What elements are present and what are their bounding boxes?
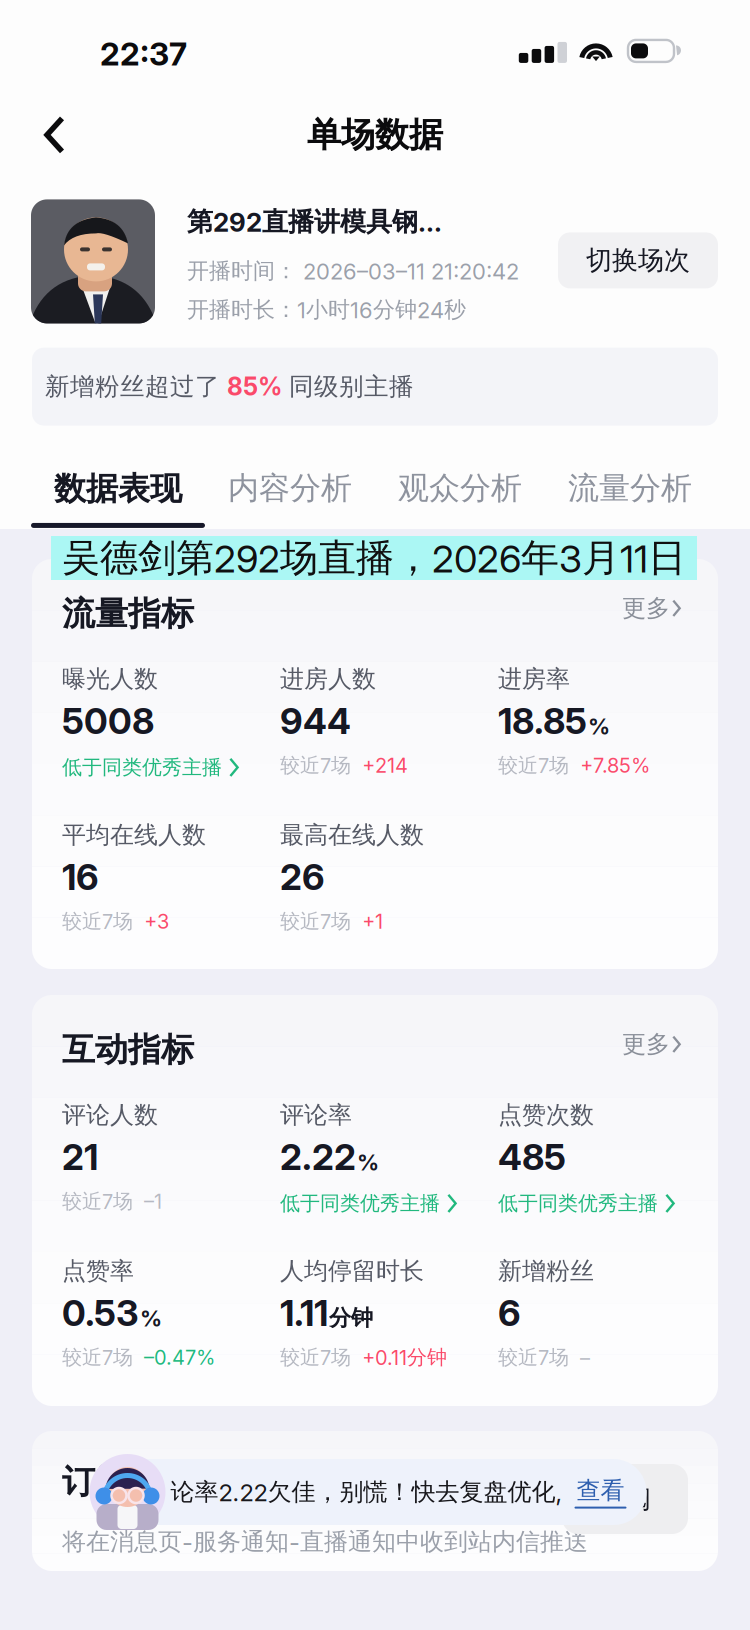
staticText: 内容分析 [228,469,352,508]
staticText: 1.11 [280,1291,328,1335]
staticText: 更多 [622,1029,670,1059]
button[interactable]: 更多 [622,1029,688,1070]
staticText: 流量指标 [62,593,194,635]
staticText: –0.47% [144,1345,215,1369]
staticText: 曝光人数 [62,664,158,694]
staticText: 第292直播讲模具钢… [187,205,442,238]
staticText: 单场数据 [307,113,443,156]
staticText: 进房人数 [280,664,376,694]
staticText: 较近7场 [498,753,569,778]
staticText: 流量分析 [568,469,692,508]
staticText: 吴德剑第292场直播，2026年3月11日 [62,534,686,582]
staticText: 944 [280,699,351,743]
button[interactable]: 订阅 [562,1464,688,1534]
staticText: 人均停留时长 [280,1256,424,1286]
staticText: 订阅 [599,1483,651,1515]
staticText: 新增粉丝超过了 [45,371,227,402]
staticText: 最高在线人数 [280,820,424,850]
staticText: 6 [498,1291,521,1335]
staticText: % [588,713,610,740]
staticText: 较近7场 [62,1345,133,1370]
staticText: 观众分析 [398,469,522,508]
staticText: 85% [227,372,282,401]
button[interactable]: 返回 [20,99,89,170]
staticText: 0.53 [62,1291,139,1335]
staticText: 21 [62,1135,98,1179]
staticText: 较近7场 [280,753,351,778]
staticText: 16 [62,855,99,899]
button[interactable]: 数据表现 [31,469,205,530]
staticText: +7.85% [580,753,650,777]
staticText: 较近7场 [62,1189,133,1214]
staticText: 2.22 [280,1135,356,1179]
staticText: 同级别主播 [282,371,414,402]
staticText: 开播时长：1小时16分钟24秒 [187,296,466,324]
staticText: 点赞率 [62,1256,134,1286]
staticText: 进房率 [498,664,570,694]
staticText: +3 [144,909,169,933]
button[interactable]: 内容分析 [205,469,375,530]
staticText: 互动指标 [62,1029,194,1071]
staticText: +1 [362,909,383,933]
button[interactable]: 切换场次 [558,232,718,288]
staticText: % [140,1305,162,1332]
staticText: 评论率 [280,1100,352,1130]
button[interactable]: 流量分析 [545,469,715,530]
staticText: 18.85 [498,699,587,743]
button[interactable]: 更多 [622,593,688,634]
staticText: 数据表现 [54,469,182,509]
staticText: 5008 [62,699,154,743]
staticText: 开播时间： 2026–03–11 21:20:42 [187,257,519,285]
staticText: 低于同类优秀主播 [62,755,222,780]
staticText: 更多 [622,593,670,623]
staticText: 查看 [576,1475,624,1506]
staticText: 较近7场 [62,909,133,934]
staticText: 22:37 [100,34,187,73]
staticText: –1 [144,1189,162,1213]
staticText: 较近7场 [498,1345,569,1370]
staticText: 论率2.22欠佳，别慌！快去复盘优化, [170,1477,562,1507]
staticText: 新增粉丝 [498,1256,594,1286]
staticText: 平均在线人数 [62,820,206,850]
staticText: 较近7场 [280,1345,351,1370]
staticText: 低于同类优秀主播 [498,1191,658,1216]
staticText: 将在消息页-服务通知-直播通知中收到站内信推送 [62,1527,588,1557]
button[interactable]: 观众分析 [375,469,545,530]
staticText: – [580,1345,590,1369]
staticText: 较近7场 [280,909,351,934]
button[interactable]: 查看 [566,1475,648,1509]
staticText: 点赞次数 [498,1100,594,1130]
staticText: 低于同类优秀主播 [280,1191,440,1216]
staticText: 26 [280,855,325,899]
staticText: +214 [362,753,408,777]
staticText: 485 [498,1135,566,1179]
staticText: 评论人数 [62,1100,158,1130]
staticText: 切换场次 [586,244,690,277]
staticText: +0.11分钟 [362,1345,447,1370]
staticText: % [357,1149,379,1176]
staticText: 订阅 [62,1461,128,1503]
staticText: 分钟 [329,1304,373,1332]
